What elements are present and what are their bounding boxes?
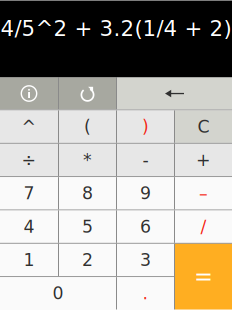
button[interactable]: - [117,144,174,176]
staticText: 9 [140,183,151,203]
staticText: ( [84,117,91,137]
button[interactable]: 8 [59,177,116,209]
staticText: 0 [52,283,63,303]
staticText: 8 [82,183,93,203]
button[interactable]: 9 [117,177,174,209]
staticText: ÷ [21,150,36,170]
button[interactable]: + [175,144,232,176]
button[interactable]: . [117,277,174,309]
button[interactable]: 3 [117,244,174,276]
staticText: ^ [21,117,36,137]
button[interactable]: Info [0,77,58,109]
staticText: 7 [23,183,34,203]
button[interactable]: Backspace [117,77,232,109]
staticText: / [200,217,206,237]
staticText: - [142,150,148,170]
button[interactable]: ÷ [0,144,58,176]
button[interactable]: C [175,110,232,143]
staticText: * [83,150,92,170]
staticText: C [197,117,209,137]
button[interactable]: / [175,210,232,243]
button[interactable]: 0 [0,277,116,309]
button[interactable]: ) [117,110,174,143]
staticText: 4/5^2 + 3.2(1/4 + 2) [0,16,231,41]
button[interactable]: * [59,144,116,176]
staticText: 5 [82,217,93,237]
button[interactable]: = [175,244,232,309]
staticText: 4 [23,217,34,237]
staticText: 2 [82,250,93,270]
staticText: ) [142,117,149,137]
staticText: + [196,150,211,170]
button[interactable]: 4 [0,210,58,243]
button[interactable]: 2 [59,244,116,276]
button[interactable]: 7 [0,177,58,209]
button[interactable]: ( [59,110,116,143]
button[interactable]: Undo [59,77,116,109]
button[interactable]: 6 [117,210,174,243]
staticText: 6 [140,217,151,237]
staticText: = [194,263,213,290]
staticText: 1 [23,250,34,270]
staticText: . [142,283,148,303]
button[interactable]: ^ [0,110,58,143]
staticText: 3 [140,250,151,270]
button[interactable]: – [175,177,232,209]
button[interactable]: 1 [0,244,58,276]
staticText: – [199,183,208,203]
button[interactable]: 5 [59,210,116,243]
